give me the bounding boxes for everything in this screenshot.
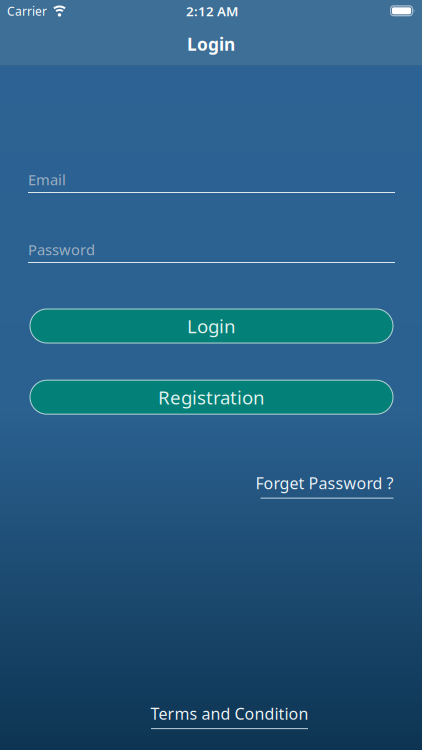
staticText: Terms and Condition — [150, 703, 308, 724]
button[interactable]: Password — [28, 235, 395, 263]
button[interactable]: Login — [29, 308, 393, 343]
staticText: Email — [28, 170, 66, 189]
staticText: Password — [28, 240, 95, 259]
staticText: Login — [187, 32, 235, 55]
button[interactable]: Terms and Condition — [150, 703, 308, 729]
staticText: Forget Password ? — [255, 472, 393, 494]
staticText: 2:12 AM — [186, 2, 238, 20]
staticText: Registration — [158, 385, 265, 410]
button[interactable]: Forget Password ? — [255, 472, 393, 499]
staticText: Login — [187, 314, 236, 338]
staticText: Carrier — [7, 3, 47, 19]
button[interactable]: Email — [28, 165, 395, 193]
button[interactable]: Registration — [29, 380, 393, 415]
